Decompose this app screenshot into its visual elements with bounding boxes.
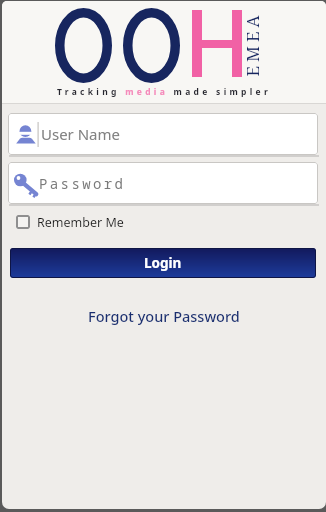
staticText: User Name: [41, 124, 121, 144]
staticText: EMEA: [241, 10, 265, 78]
button[interactable]: User Name: [8, 113, 318, 155]
button[interactable]: Remember Me: [10, 209, 150, 235]
staticText: Login: [144, 254, 182, 272]
staticText: Tracking media made simpler: [57, 86, 272, 98]
button[interactable]: Forgot your Password: [88, 306, 240, 326]
button[interactable]: Login: [10, 248, 316, 278]
button[interactable]: Password: [8, 162, 318, 204]
staticText: Remember Me: [37, 214, 124, 231]
staticText: Password: [39, 174, 126, 193]
